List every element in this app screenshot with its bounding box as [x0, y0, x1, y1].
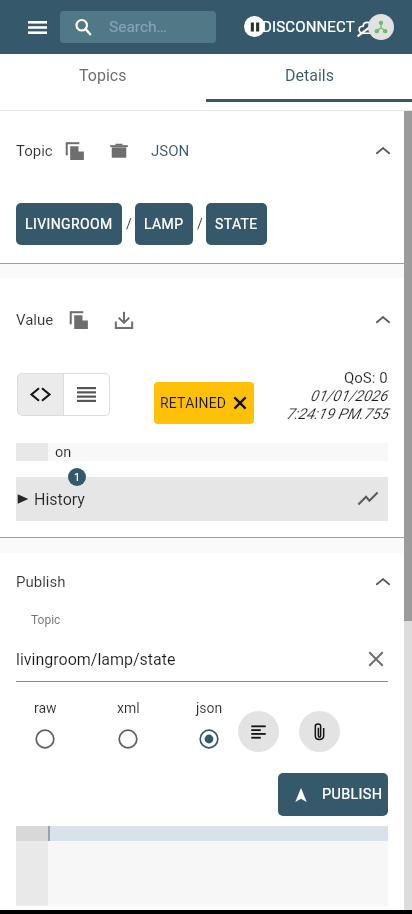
staticText: 01/01/2026: [310, 387, 388, 405]
staticText: Topic: [31, 613, 61, 627]
button[interactable]: Collapse: [370, 138, 396, 164]
button[interactable]: Publish: [0, 553, 412, 610]
staticText: raw: [34, 700, 57, 716]
button[interactable]: Delete topic: [106, 138, 132, 164]
button[interactable]: Menu: [16, 9, 59, 45]
staticText: /: [126, 216, 132, 232]
staticText: Value: [16, 311, 54, 329]
button[interactable]: Collapse: [370, 569, 396, 595]
button[interactable]: Format: [238, 711, 279, 752]
button[interactable]: Details: [206, 54, 412, 96]
staticText: Publish: [16, 573, 66, 591]
button[interactable]: Search…: [60, 11, 216, 43]
staticText: History: [34, 490, 85, 509]
button[interactable]: DISCONNECT: [240, 11, 355, 43]
staticText: STATE: [215, 216, 258, 232]
staticText: 7:24:19 PM.755: [286, 405, 388, 423]
button[interactable]: Attach: [299, 711, 340, 752]
button[interactable]: PUBLISH: [278, 773, 388, 816]
staticText: livingroom/lamp/state: [16, 650, 176, 669]
staticText: LIVINGROOM: [25, 216, 113, 232]
staticText: QoS: 0: [344, 369, 388, 387]
staticText: JSON: [151, 142, 190, 160]
staticText: Topic: [16, 142, 53, 160]
button[interactable]: LIVINGROOM: [16, 203, 122, 245]
button[interactable]: Disconnected: [355, 16, 378, 39]
button[interactable]: RETAINED: [154, 382, 254, 424]
staticText: Topics: [79, 66, 127, 85]
staticText: Search…: [109, 18, 167, 36]
staticText: xml: [117, 700, 140, 716]
staticText: RETAINED: [160, 395, 226, 411]
staticText: json: [196, 700, 223, 716]
button[interactable]: xml: [103, 700, 153, 749]
button[interactable]: Copy topic: [61, 137, 89, 165]
staticText: LAMP: [144, 216, 184, 232]
staticText: 1: [74, 471, 81, 484]
button[interactable]: History: [16, 477, 388, 521]
staticText: PUBLISH: [322, 786, 382, 803]
button[interactable]: Text view: [64, 374, 109, 415]
button[interactable]: json: [184, 700, 234, 749]
button[interactable]: Download value: [110, 306, 138, 334]
staticText: /: [197, 216, 203, 232]
button[interactable]: Value: [0, 278, 412, 361]
button[interactable]: LAMP: [135, 203, 193, 245]
staticText: DISCONNECT: [262, 18, 355, 36]
button[interactable]: Topics: [0, 54, 206, 96]
button[interactable]: Copy value: [65, 306, 93, 334]
button[interactable]: Collapse: [370, 307, 396, 333]
button[interactable]: Topic: [0, 111, 412, 191]
button[interactable]: Clear topic: [364, 647, 388, 671]
button[interactable]: Code view: [18, 374, 63, 415]
button[interactable]: Broker: [368, 14, 394, 40]
button[interactable]: STATE: [206, 203, 267, 245]
staticText: Details: [285, 66, 334, 85]
staticText: on: [55, 444, 72, 461]
button[interactable]: raw: [20, 700, 70, 749]
